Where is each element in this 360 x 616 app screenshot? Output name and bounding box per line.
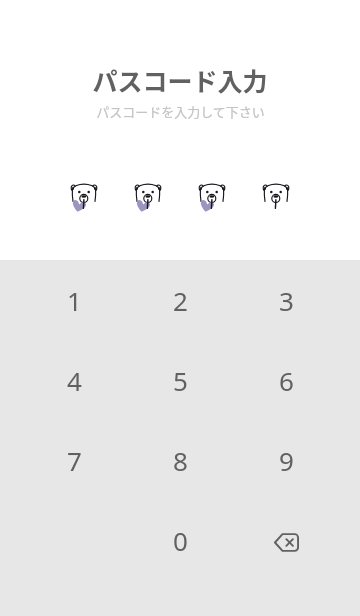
staticText: 6 (279, 363, 294, 398)
staticText: 2 (173, 283, 188, 318)
button[interactable]: 8 (127, 420, 233, 500)
other: Backspace (260, 514, 312, 566)
button[interactable]: 6 (233, 340, 339, 420)
staticText: パスコード入力 (92, 62, 268, 98)
button[interactable]: 3 (233, 260, 339, 340)
staticText: 3 (279, 283, 294, 318)
button[interactable]: 4 (21, 340, 127, 420)
button[interactable]: 0 (127, 500, 233, 580)
staticText: 1 (67, 283, 82, 318)
button[interactable]: 1 (21, 260, 127, 340)
button[interactable]: 2 (127, 260, 233, 340)
staticText: 7 (67, 443, 82, 478)
staticText: パスコードを入力して下さい (96, 102, 265, 121)
button[interactable]: 5 (127, 340, 233, 420)
button[interactable]: 7 (21, 420, 127, 500)
staticText: 0 (173, 523, 188, 558)
staticText: 5 (173, 363, 188, 398)
staticText: 8 (173, 443, 188, 478)
button[interactable]: Backspace (233, 500, 339, 580)
staticText: 4 (67, 363, 82, 398)
staticText: 9 (279, 443, 294, 478)
button[interactable]: 9 (233, 420, 339, 500)
